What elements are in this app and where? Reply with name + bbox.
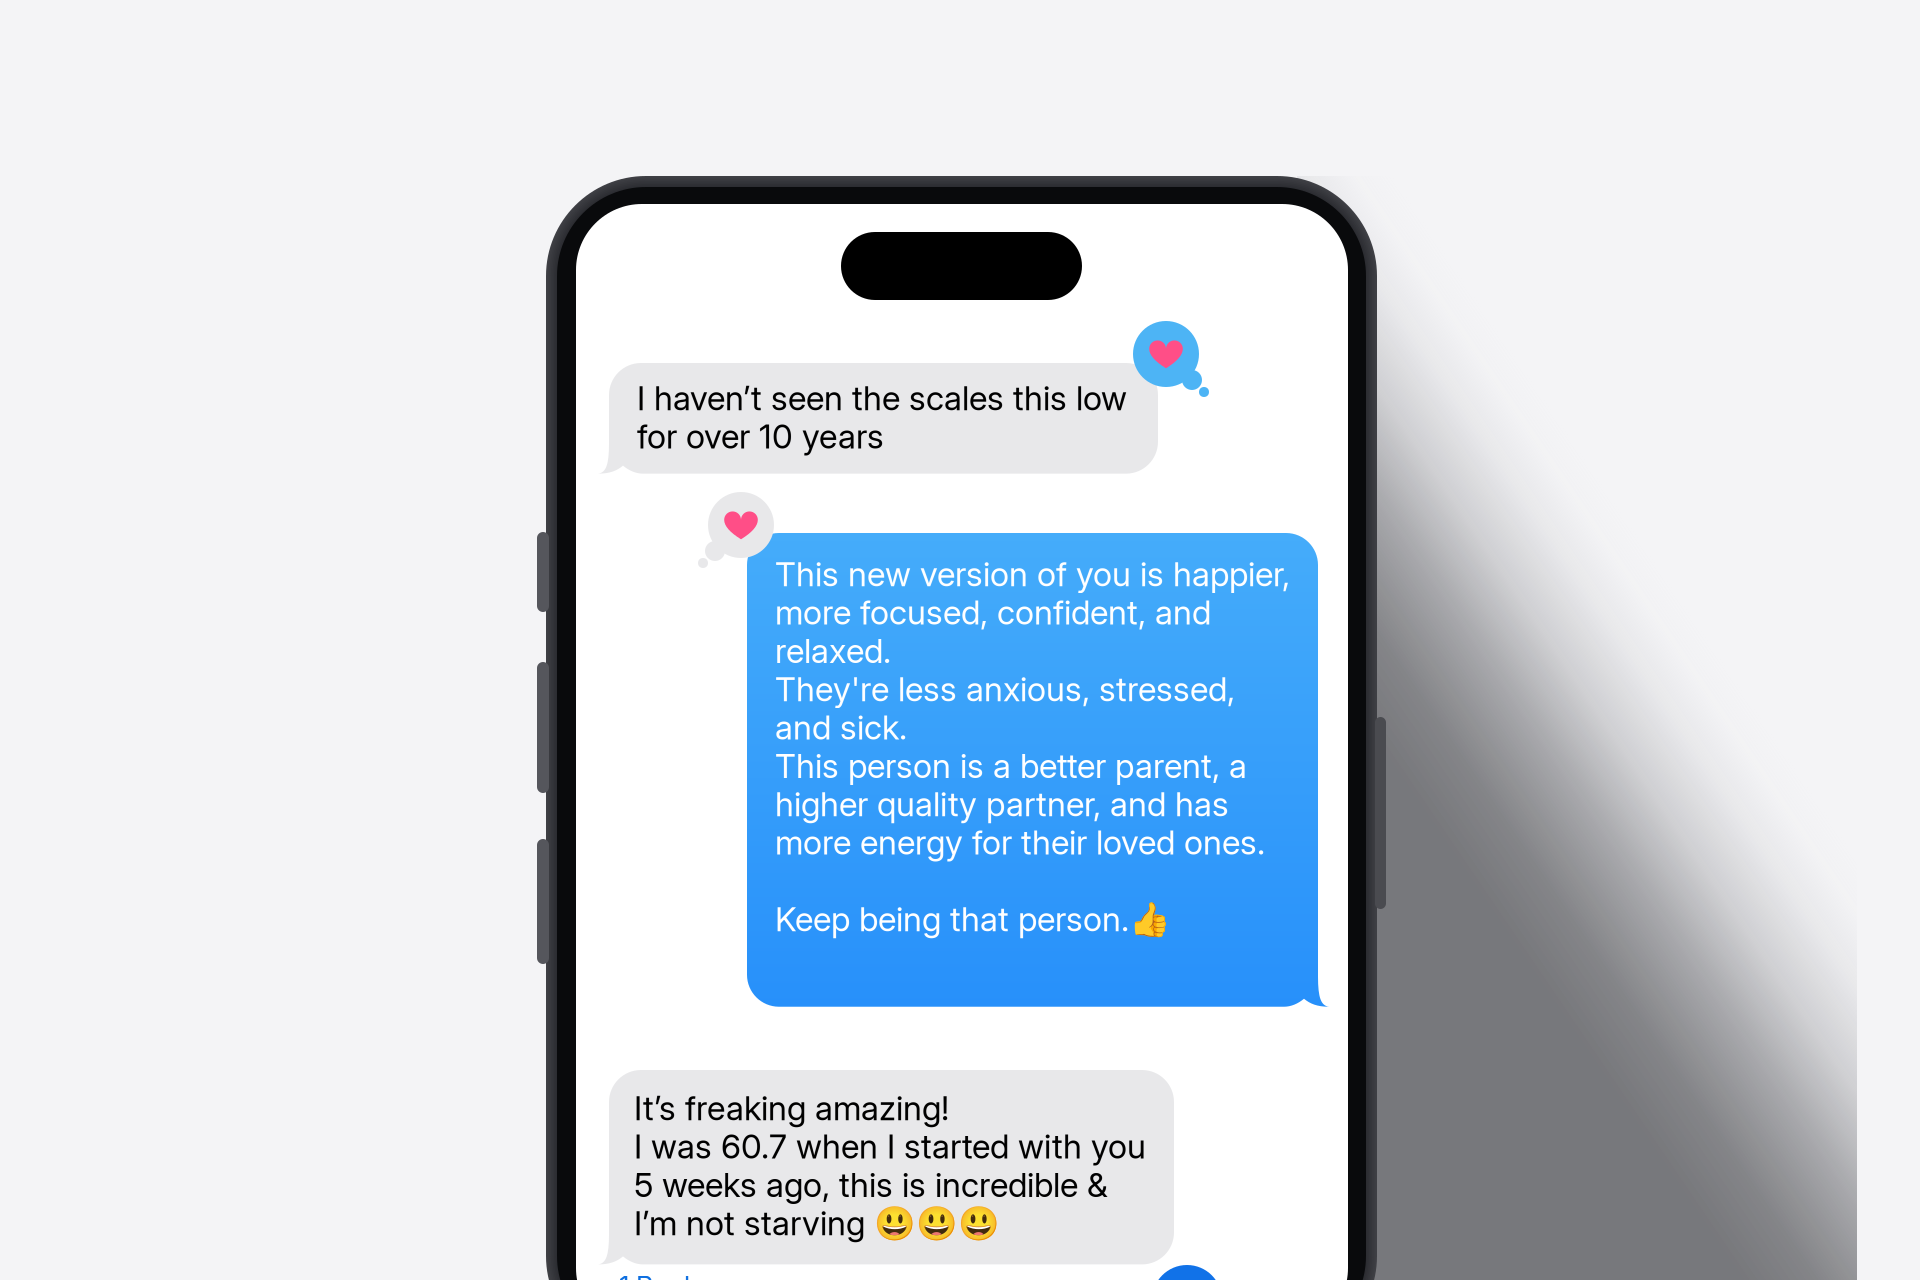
staticText: This new version of you is happier, more… xyxy=(775,554,1290,978)
button[interactable]: 1 Reply xyxy=(619,1270,705,1280)
staticText: It’s freaking amazing! I was 60.7 when I… xyxy=(634,1088,1146,1243)
button[interactable]: I haven’t seen the scales this low for o… xyxy=(583,363,1158,474)
staticText: I haven’t seen the scales this low for o… xyxy=(637,378,1127,457)
button[interactable]: It’s freaking amazing! I was 60.7 when I… xyxy=(583,1070,1174,1264)
button[interactable]: This new version of you is happier, more… xyxy=(747,533,1344,1007)
staticText: 1 Reply xyxy=(619,1270,705,1280)
